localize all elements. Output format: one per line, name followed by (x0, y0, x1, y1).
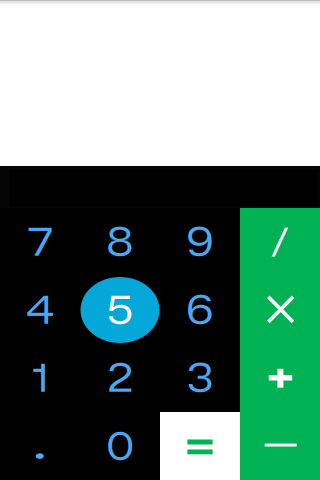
button[interactable]: 1 (0, 344, 80, 412)
button[interactable]: 6 (160, 276, 240, 344)
button[interactable]: 8 (80, 208, 160, 276)
button[interactable]: 0 (80, 412, 160, 480)
button[interactable]: 5 (80, 276, 160, 344)
button[interactable]: Divide (240, 208, 320, 276)
staticText: 3 (186, 354, 213, 401)
button[interactable]: 9 (160, 208, 240, 276)
staticText: 1 (31, 354, 48, 401)
button[interactable]: Add (240, 344, 320, 412)
staticText: 8 (106, 218, 134, 265)
button[interactable]: 7 (0, 208, 80, 276)
staticText: 5 (106, 286, 133, 333)
staticText: 7 (27, 218, 52, 265)
button[interactable]: Equals (160, 412, 240, 480)
button[interactable]: Multiply (240, 276, 320, 344)
button[interactable]: 4 (0, 276, 80, 344)
button[interactable]: 3 (160, 344, 240, 412)
button[interactable]: Decimal point (0, 412, 80, 480)
button[interactable]: 2 (80, 344, 160, 412)
staticText: 2 (107, 354, 133, 401)
staticText: 6 (186, 286, 214, 333)
staticText: 4 (26, 286, 54, 333)
staticText: 0 (106, 422, 134, 469)
button[interactable]: Subtract (240, 412, 320, 480)
staticText: 9 (186, 218, 214, 265)
